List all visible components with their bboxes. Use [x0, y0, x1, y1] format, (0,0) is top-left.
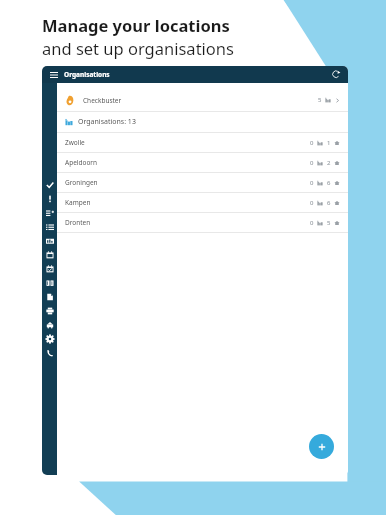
button[interactable]: Organisations: 13 — [57, 112, 348, 132]
button[interactable]: Call — [42, 346, 57, 360]
staticText: 6 — [327, 199, 331, 207]
button[interactable]: Add — [309, 434, 334, 459]
staticText: Manage your locations — [42, 14, 230, 36]
button[interactable]: Chart — [42, 234, 57, 248]
staticText: Groningen — [65, 178, 98, 187]
button[interactable]: Zwolle — [57, 133, 348, 152]
staticText: 5 — [318, 96, 322, 104]
button[interactable]: Sync — [329, 68, 342, 81]
button[interactable]: Settings — [42, 332, 57, 346]
button[interactable]: Kampen — [57, 193, 348, 212]
staticText: 0 — [310, 139, 314, 147]
staticText: 5 — [327, 219, 331, 227]
staticText: 2 — [327, 159, 331, 167]
staticText: 0 — [310, 159, 314, 167]
button[interactable]: List — [42, 220, 57, 234]
button[interactable]: Dronten — [57, 213, 348, 232]
staticText: Organisations — [64, 70, 110, 79]
staticText: Dronten — [65, 218, 91, 227]
button[interactable]: Calendar — [42, 248, 57, 262]
staticText: 6 — [327, 179, 331, 187]
button[interactable]: Apeldoorn — [57, 153, 348, 172]
staticText: Zwolle — [65, 138, 85, 147]
button[interactable]: Checklist — [42, 262, 57, 276]
button[interactable]: Printer — [42, 304, 57, 318]
button[interactable]: Groningen — [57, 173, 348, 192]
button[interactable]: Tasks — [42, 178, 57, 192]
staticText: 1 — [327, 139, 331, 147]
staticText: Checkbuster — [83, 96, 122, 105]
staticText: 0 — [310, 199, 314, 207]
staticText: 0 — [310, 179, 314, 187]
staticText: Kampen — [65, 198, 91, 207]
button[interactable]: Add list — [42, 206, 57, 220]
button[interactable]: Alerts — [42, 192, 57, 206]
staticText: and set up organisations — [42, 37, 234, 59]
staticText: Apeldoorn — [65, 158, 98, 167]
button[interactable]: Reports — [42, 276, 57, 290]
button[interactable]: Documents — [42, 290, 57, 304]
button[interactable]: Checkbuster — [57, 89, 348, 111]
staticText: 0 — [310, 219, 314, 227]
staticText: Organisations: 13 — [78, 117, 136, 127]
button[interactable]: Menu — [48, 69, 60, 81]
button[interactable]: Team — [42, 318, 57, 332]
